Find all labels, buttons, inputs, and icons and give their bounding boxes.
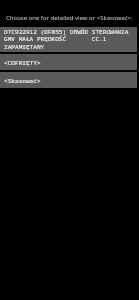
staticText: Choose one for detailed view or <Skasowa…	[6, 14, 133, 22]
button[interactable]: <COFNIĘTY>	[0, 54, 137, 70]
staticText: DTC922912 (DF055) OBWÓD STEROWANIA GMV M…	[4, 27, 129, 51]
button[interactable]: <Skasować>	[0, 72, 137, 88]
staticText: <COFNIĘTY>	[4, 58, 41, 66]
button[interactable]: DTC922912 (DF055) OBWÓD STEROWANIA GMV M…	[0, 27, 137, 52]
staticText: <Skasować>	[4, 76, 41, 84]
